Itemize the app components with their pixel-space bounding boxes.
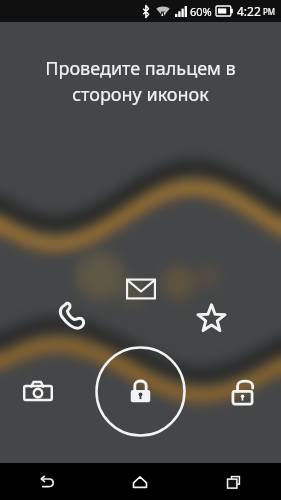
button[interactable]: Unlock bbox=[221, 371, 263, 413]
button[interactable]: Recents bbox=[187, 463, 281, 500]
button[interactable]: Unlock screen bbox=[95, 346, 186, 437]
button[interactable]: Camera bbox=[17, 371, 59, 413]
button[interactable]: Phone bbox=[50, 296, 92, 338]
button[interactable]: Back bbox=[0, 463, 93, 500]
button[interactable]: Home bbox=[93, 463, 187, 500]
staticText: 60% bbox=[190, 4, 212, 19]
staticText: PM bbox=[263, 6, 276, 17]
staticText: 4:22 bbox=[237, 3, 261, 19]
staticText: Проведите пальцем в сторону иконок bbox=[45, 56, 236, 107]
button[interactable]: Messages bbox=[120, 268, 162, 310]
button[interactable]: Favorites bbox=[190, 296, 232, 338]
